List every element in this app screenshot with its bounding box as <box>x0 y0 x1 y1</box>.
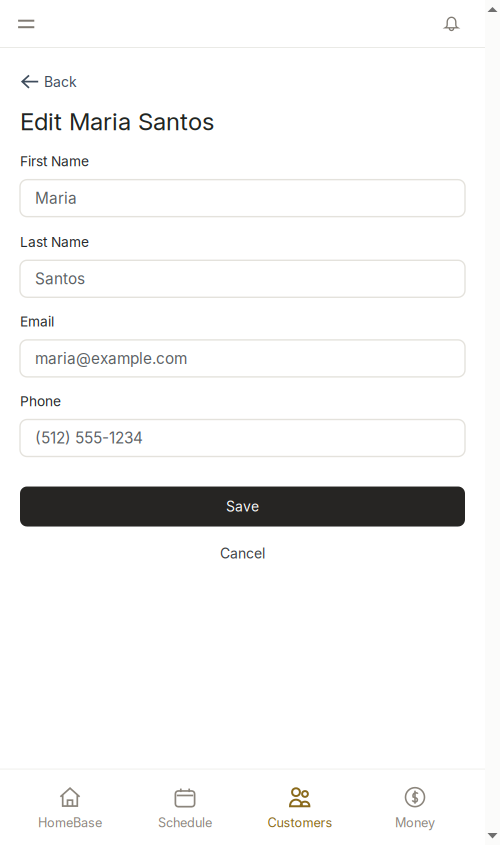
staticText: HomeBase <box>38 815 102 830</box>
staticText: maria@example.com <box>35 349 187 368</box>
button[interactable]: Money <box>357 787 472 830</box>
button[interactable]: Menu <box>0 0 49 47</box>
staticText: Phone <box>20 393 61 409</box>
button[interactable]: Schedule <box>127 787 242 830</box>
button[interactable]: Cancel <box>20 536 465 570</box>
staticText: Last Name <box>20 234 89 250</box>
button[interactable]: Customers <box>242 787 357 830</box>
staticText: Santos <box>35 269 85 288</box>
staticText: Customers <box>267 815 332 830</box>
staticText: Save <box>226 498 259 515</box>
staticText: Schedule <box>158 815 212 830</box>
button[interactable]: Notifications <box>430 0 485 47</box>
button[interactable]: Back <box>20 72 77 92</box>
staticText: Maria <box>35 189 77 207</box>
staticText: (512) 555-1234 <box>35 429 143 447</box>
staticText: Back <box>44 73 77 90</box>
button[interactable]: HomeBase <box>12 787 127 830</box>
button[interactable]: Save <box>20 486 465 526</box>
staticText: Edit Maria Santos <box>20 107 214 136</box>
staticText: Cancel <box>220 545 265 562</box>
staticText: Email <box>20 313 54 330</box>
staticText: Money <box>395 815 435 830</box>
staticText: First Name <box>20 153 89 170</box>
